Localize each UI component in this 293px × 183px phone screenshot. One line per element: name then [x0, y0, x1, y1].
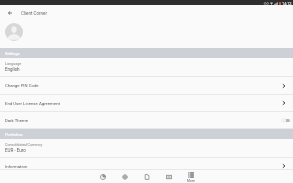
staticText: Client Corner: [21, 11, 47, 16]
button[interactable]: Overview: [92, 170, 114, 183]
staticText: Language: [5, 62, 22, 66]
staticText: Consolidated Currency: [5, 143, 43, 147]
button[interactable]: Change PIN Code: [0, 77, 293, 95]
button[interactable]: Back: [0, 5, 21, 21]
button[interactable]: More: [180, 170, 202, 183]
button[interactable]: Documents: [136, 170, 158, 183]
button[interactable]: Messages: [158, 170, 180, 183]
staticText: English: [5, 67, 20, 72]
staticText: Portfolios: [5, 132, 23, 137]
button[interactable]: Profile photo: [5, 23, 23, 41]
staticText: Settings: [5, 51, 20, 56]
button[interactable]: Dark Theme: [0, 112, 293, 129]
staticText: 14:12: [282, 1, 292, 5]
button[interactable]: Consolidated Currency: [0, 139, 293, 158]
staticText: EUR - Euro: [5, 148, 26, 153]
button[interactable]: End User License Agreement: [0, 95, 293, 112]
staticText: More: [187, 179, 195, 183]
button[interactable]: Information: [0, 158, 293, 175]
staticText: Dark Theme: [5, 118, 29, 123]
staticText: End User License Agreement: [5, 101, 60, 106]
button[interactable]: Assets: [114, 170, 136, 183]
staticText: Change PIN Code: [5, 83, 39, 88]
button[interactable]: Language: [0, 58, 293, 77]
staticText: Information: [5, 164, 28, 169]
